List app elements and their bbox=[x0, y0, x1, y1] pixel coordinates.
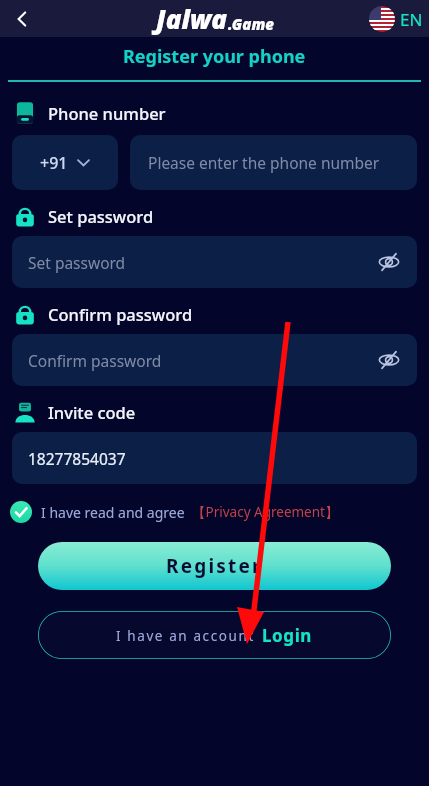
staticText: EN bbox=[400, 8, 423, 31]
button[interactable]: Back bbox=[4, 1, 40, 37]
staticText: 18277854037 bbox=[28, 448, 126, 469]
staticText: Jalwa bbox=[156, 1, 228, 36]
button[interactable]: Please enter the phone number bbox=[130, 135, 417, 190]
staticText: Please enter the phone number bbox=[148, 152, 380, 173]
button[interactable]: 18277854037 bbox=[12, 432, 417, 484]
staticText: Confirm password bbox=[28, 350, 162, 371]
button[interactable]: Show password bbox=[375, 346, 403, 374]
button[interactable]: +91 bbox=[12, 135, 118, 190]
staticText: Set password bbox=[28, 252, 126, 273]
staticText: Register your phone bbox=[123, 44, 306, 69]
staticText: Login bbox=[262, 624, 313, 647]
staticText: I have read and agree bbox=[41, 503, 185, 522]
staticText: Invite code bbox=[48, 401, 136, 423]
staticText: Register bbox=[166, 553, 263, 579]
button[interactable]: Show password bbox=[375, 248, 403, 276]
staticText: Set password bbox=[48, 205, 154, 227]
button[interactable]: Set password bbox=[12, 236, 417, 288]
button[interactable]: I have read and agree bbox=[10, 501, 429, 523]
staticText: Confirm password bbox=[48, 303, 193, 325]
button[interactable]: Confirm password bbox=[12, 334, 417, 386]
staticText: +91 bbox=[40, 152, 68, 174]
staticText: Phone number bbox=[48, 102, 166, 124]
button[interactable]: I have an account bbox=[38, 611, 391, 659]
button[interactable]: EN bbox=[369, 6, 423, 32]
staticText: I have an account bbox=[116, 627, 255, 645]
button[interactable]: Register bbox=[38, 542, 391, 590]
staticText: .Game bbox=[228, 14, 274, 34]
staticText: 【Privacy Agreement】 bbox=[192, 503, 339, 521]
